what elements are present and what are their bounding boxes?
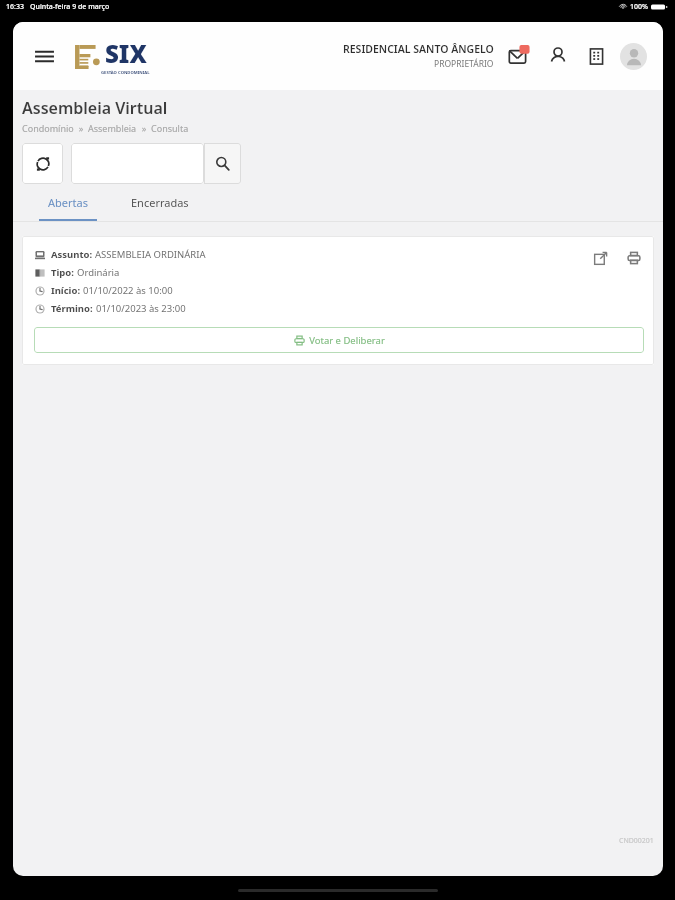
staticText: Início: [51,284,83,297]
staticText: Votar e Deliberar [309,334,385,347]
staticText: Quinta-feira 9 de março [30,2,110,12]
button[interactable]: Perfil [546,44,570,68]
button[interactable] [71,143,204,184]
staticText: 100% [630,2,648,12]
button[interactable]: Conta [620,43,647,70]
staticText: 01/10/2022 às 10:00 [83,284,173,297]
button[interactable]: Editar [590,248,610,268]
staticText: Término: [51,302,96,315]
staticText: Consulta [151,122,189,134]
button[interactable]: Assunto: [22,236,654,365]
button[interactable]: Mensagens [506,43,532,69]
staticText: ASSEMBLEIA ORDINÁRIA [95,248,206,261]
staticText: Assembleia [88,122,137,134]
button[interactable]: Abertas [27,195,109,221]
staticText: Encerradas [131,195,189,210]
staticText: PROPRIETÁRIO [434,58,494,70]
staticText: 01/10/2023 às 23:00 [96,302,186,315]
button[interactable]: Imprimir [624,248,644,268]
button[interactable]: Encerradas [119,195,201,221]
staticText: 16:33 [6,2,24,12]
staticText: CND00201 [619,836,654,846]
staticText: » [137,122,151,134]
staticText: Tipo: [51,266,77,279]
staticText: RESIDENCIAL SANTO ÂNGELO [343,42,494,56]
staticText: Abertas [48,195,88,210]
staticText: Ordinária [77,266,120,279]
staticText: » [74,122,88,134]
staticText: Condomínio [22,122,74,134]
staticText: SIX [105,37,147,70]
button[interactable]: Pesquisar [204,143,241,184]
button[interactable]: Atualizar [22,143,63,184]
button[interactable]: Menu [29,41,59,71]
button[interactable]: Condomínio [584,44,608,68]
staticText: Assembleia Virtual [22,97,168,119]
staticText: GESTÃO CONDOMINIAL [101,70,150,76]
staticText: Assunto: [51,248,95,261]
button[interactable]: Votar e Deliberar [34,327,644,353]
